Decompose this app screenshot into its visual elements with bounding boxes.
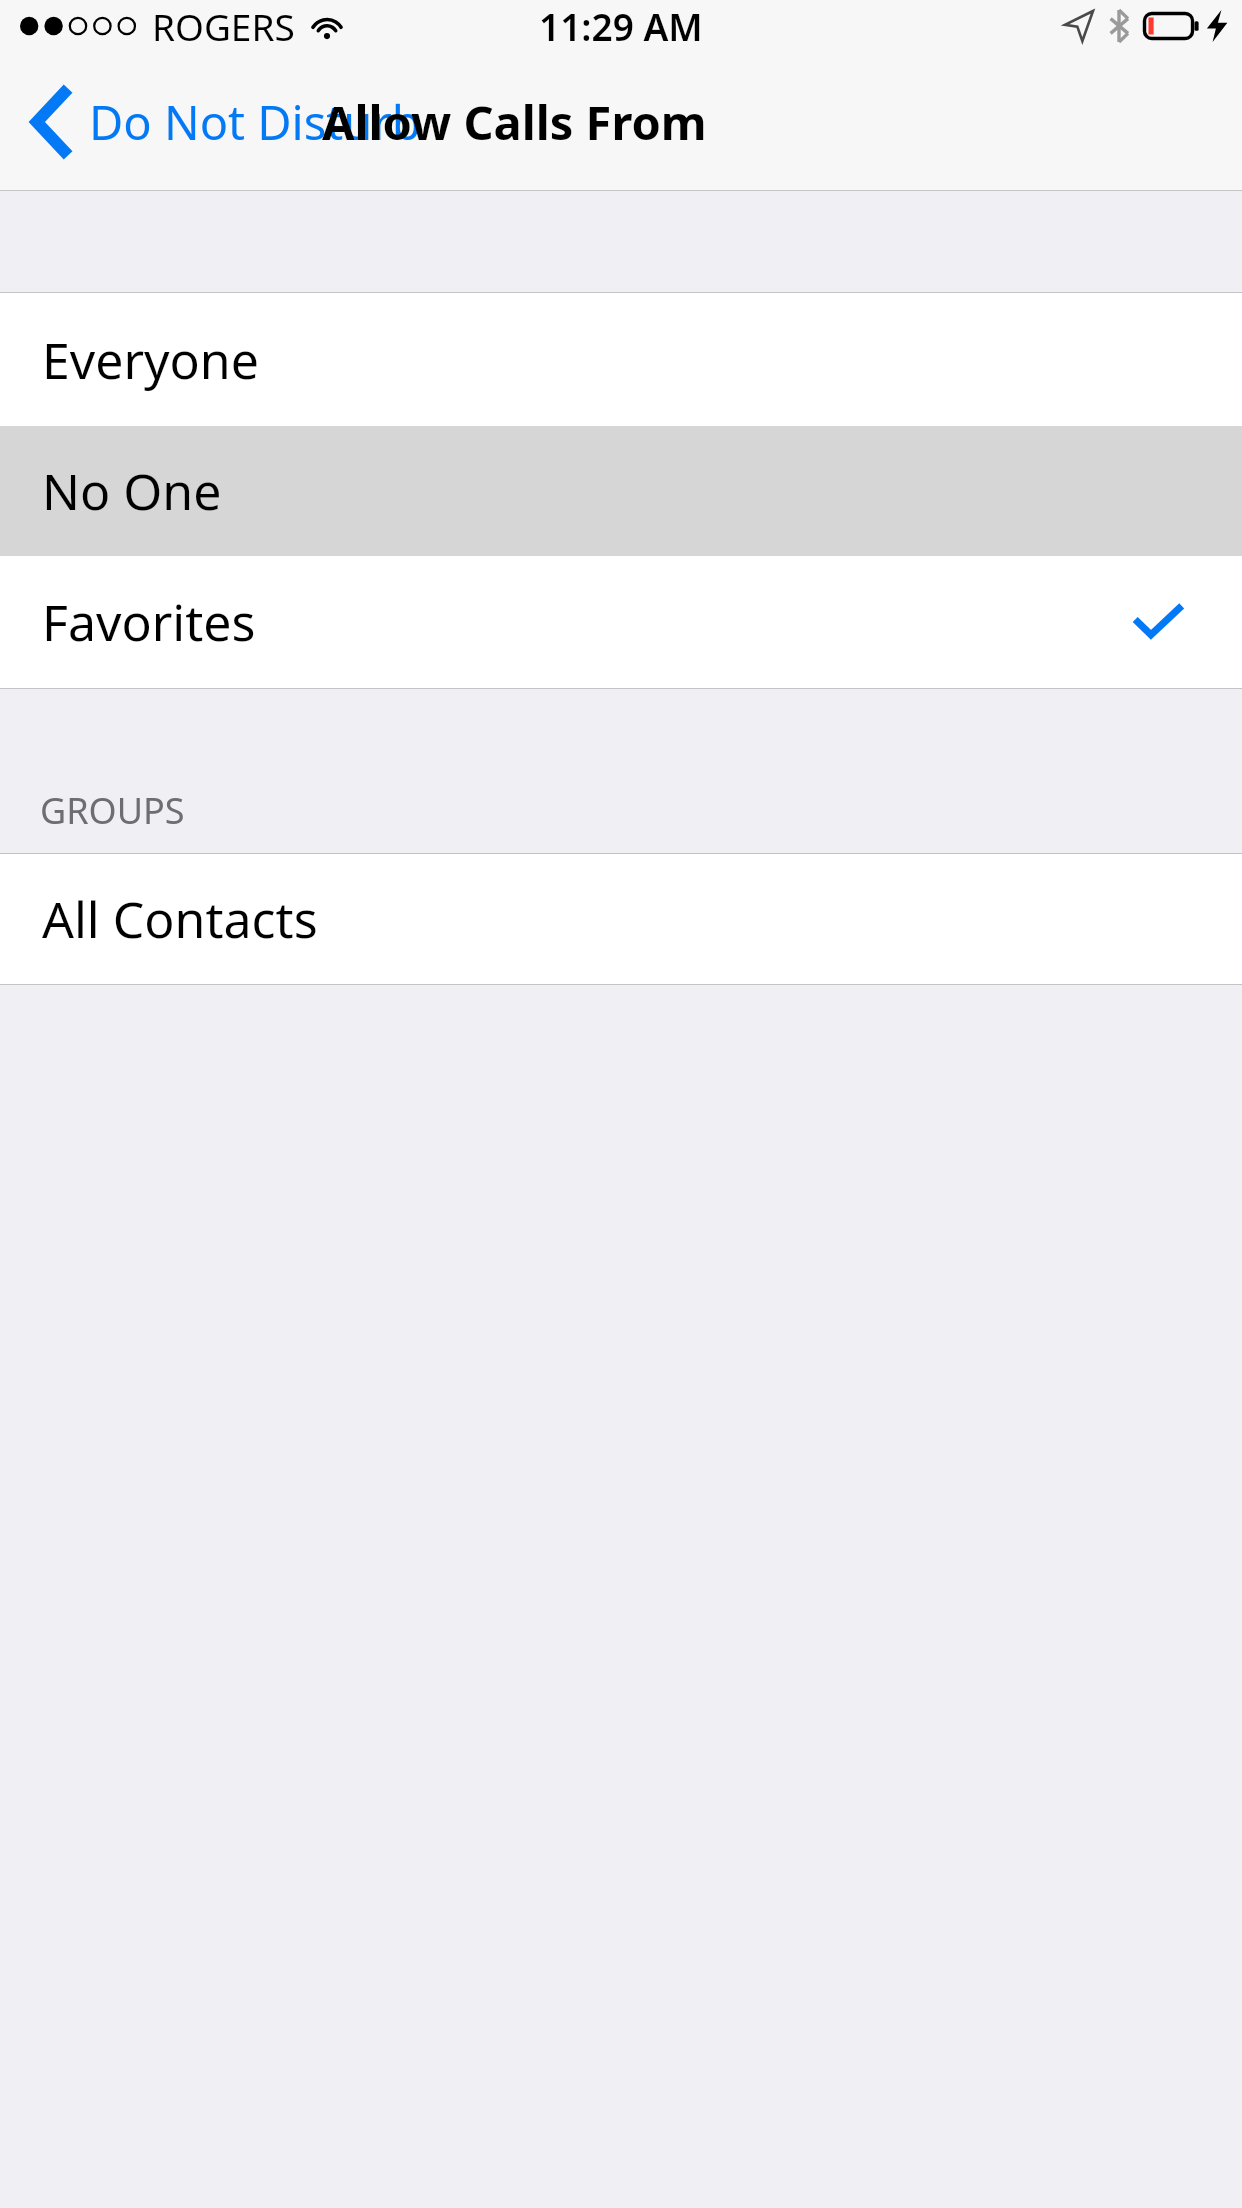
button[interactable]: All Contacts	[0, 854, 1242, 984]
button[interactable]: Everyone	[0, 293, 1242, 426]
button[interactable]: Back to Do Not Disturb	[30, 89, 421, 155]
staticText: Do Not Disturb	[89, 90, 421, 154]
staticText: All Contacts	[42, 885, 318, 953]
staticText: No One	[42, 457, 222, 525]
staticText: Favorites	[42, 588, 256, 656]
staticText: ROGERS	[152, 1, 295, 51]
staticText: Allow Calls From	[322, 90, 707, 154]
button[interactable]: No One	[0, 426, 1242, 556]
staticText: GROUPS	[40, 786, 185, 835]
staticText: Everyone	[42, 326, 259, 394]
staticText: 11:29 AM	[539, 1, 703, 51]
button[interactable]: Favorites	[0, 556, 1242, 688]
